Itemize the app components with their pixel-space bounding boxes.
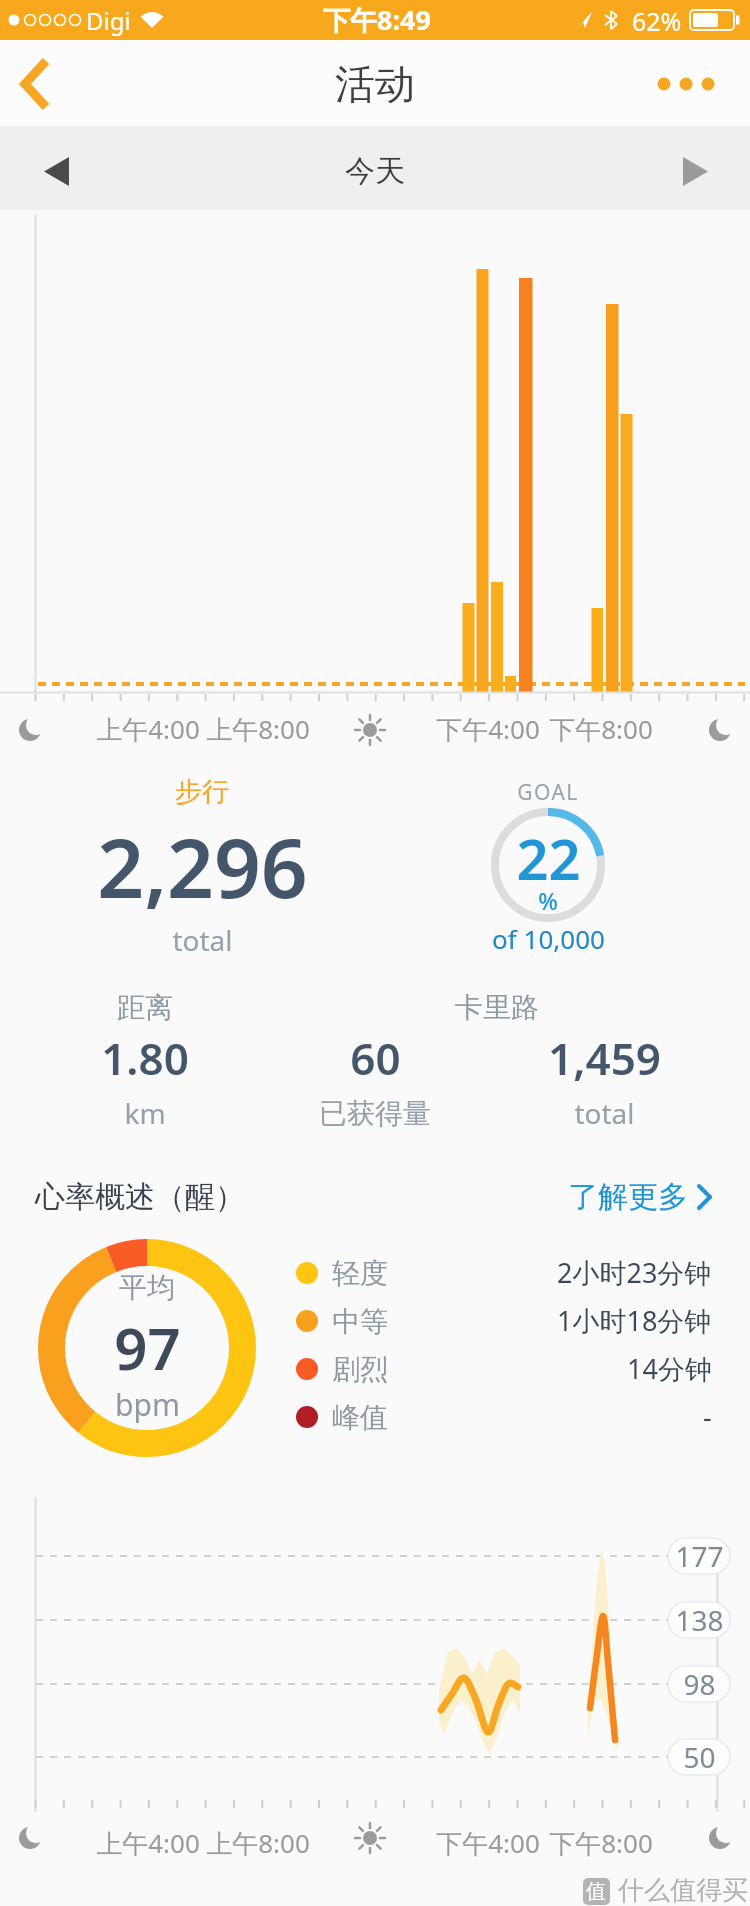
staticText: 心率概述（醒）: [35, 1178, 245, 1216]
staticText: 剧烈: [332, 1352, 388, 1387]
staticText: 峰值: [332, 1400, 388, 1435]
staticText: 2小时23分钟: [557, 1254, 712, 1291]
staticText: of 10,000: [492, 921, 605, 956]
staticText: 下午8:00: [549, 711, 653, 747]
staticText: 177: [675, 1537, 724, 1575]
staticText: 轻度: [332, 1256, 388, 1291]
staticText: 活动: [335, 59, 415, 109]
staticText: 上午8:00: [206, 1825, 310, 1861]
staticText: 上午8:00: [206, 711, 310, 747]
staticText: 60: [350, 1028, 401, 1088]
button[interactable]: [560, 1160, 730, 1230]
button[interactable]: [660, 136, 740, 200]
staticText: 距离: [117, 990, 173, 1025]
staticText: bpm: [115, 1384, 180, 1425]
staticText: total: [172, 921, 233, 959]
button[interactable]: [640, 40, 750, 126]
staticText: 50: [683, 1738, 716, 1776]
staticText: 14分钟: [627, 1350, 712, 1387]
staticText: 卡里路: [455, 990, 539, 1025]
staticText: GOAL: [517, 778, 579, 807]
staticText: 1,459: [548, 1028, 661, 1088]
staticText: 上午4:00: [96, 1825, 200, 1861]
staticText: 今天: [345, 152, 405, 190]
staticText: %: [538, 885, 558, 916]
staticText: 下午8:49: [323, 1, 431, 38]
staticText: 2,296: [97, 810, 308, 922]
staticText: 平均: [119, 1270, 175, 1305]
staticText: 22: [516, 820, 581, 896]
staticText: 97: [114, 1308, 181, 1387]
staticText: 什么值得买: [618, 1874, 748, 1906]
button[interactable]: [300, 136, 450, 200]
staticText: -: [703, 1398, 712, 1435]
staticText: 138: [675, 1601, 724, 1639]
staticText: 1.80: [101, 1028, 189, 1088]
button[interactable]: [0, 40, 90, 126]
staticText: 62%: [632, 4, 682, 38]
button[interactable]: [20, 136, 110, 200]
staticText: 了解更多: [568, 1178, 688, 1216]
staticText: 下午8:00: [549, 1825, 653, 1861]
staticText: Digi: [86, 4, 131, 37]
staticText: 上午4:00: [96, 711, 200, 747]
staticText: 步行: [175, 775, 229, 809]
staticText: 98: [683, 1665, 716, 1703]
staticText: 下午4:00: [436, 1825, 540, 1861]
staticText: 已获得量: [319, 1096, 431, 1131]
staticText: 1小时18分钟: [557, 1302, 712, 1339]
staticText: 下午4:00: [436, 711, 540, 747]
staticText: 中等: [332, 1304, 388, 1339]
staticText: 值: [586, 1879, 606, 1904]
staticText: total: [574, 1094, 635, 1132]
staticText: km: [124, 1094, 166, 1132]
